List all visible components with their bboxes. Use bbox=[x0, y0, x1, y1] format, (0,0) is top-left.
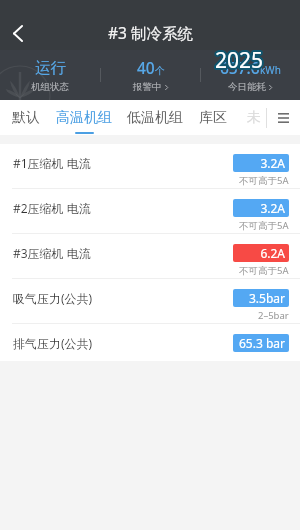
staticText: 排气压力(公共) bbox=[13, 335, 93, 351]
staticText: 运行 bbox=[35, 58, 66, 78]
staticText: 今日能耗 bbox=[228, 81, 266, 93]
staticText: 2025 bbox=[216, 46, 265, 75]
button[interactable]: Menu bbox=[267, 100, 300, 135]
staticText: #1压缩机 电流 bbox=[13, 155, 91, 171]
staticText: 2025 bbox=[216, 47, 265, 76]
staticText: 2025 bbox=[215, 47, 264, 76]
staticText: 2025 bbox=[213, 45, 262, 74]
staticText: 2025 bbox=[214, 48, 263, 77]
staticText: 2025 bbox=[216, 48, 265, 77]
staticText: 不可高于5A bbox=[239, 219, 289, 232]
staticText: 未 bbox=[247, 109, 261, 127]
button[interactable]: 默认 bbox=[12, 100, 40, 135]
staticText: 3.5bar bbox=[248, 290, 285, 306]
button[interactable]: #1压缩机 电流 bbox=[0, 144, 300, 188]
staticText: 不可高于5A bbox=[239, 174, 289, 187]
staticText: 6.2A bbox=[260, 245, 285, 261]
button[interactable]: 657.6 bbox=[201, 50, 300, 100]
staticText: 40 bbox=[137, 57, 155, 78]
staticText: #3 制冷系统 bbox=[108, 22, 193, 43]
button[interactable]: #3压缩机 电流 bbox=[0, 234, 300, 278]
staticText: 2025 bbox=[214, 44, 263, 73]
staticText: 2025 bbox=[216, 44, 265, 73]
staticText: 2025 bbox=[215, 46, 264, 75]
button[interactable]: 排气压力(公共) bbox=[0, 324, 300, 361]
staticText: 库区 bbox=[199, 109, 227, 127]
staticText: 吸气压力(公共) bbox=[13, 290, 93, 306]
button[interactable]: 库区 bbox=[199, 100, 227, 135]
staticText: 2025 bbox=[215, 46, 264, 75]
staticText: 报警中 bbox=[133, 81, 162, 93]
staticText: 2025 bbox=[217, 45, 266, 74]
button[interactable]: 运行 bbox=[0, 50, 100, 100]
staticText: 2025 bbox=[217, 47, 266, 76]
staticText: 2025 bbox=[214, 46, 263, 75]
staticText: 2025 bbox=[213, 47, 262, 76]
staticText: 2025 bbox=[217, 46, 266, 75]
staticText: 2025 bbox=[213, 46, 262, 75]
staticText: #3压缩机 电流 bbox=[13, 245, 91, 261]
staticText: 2025 bbox=[216, 45, 265, 74]
button[interactable]: #2压缩机 电流 bbox=[0, 189, 300, 233]
staticText: 低温机组 bbox=[127, 109, 183, 127]
staticText: 2025 bbox=[214, 45, 263, 74]
button[interactable]: 低温机组 bbox=[127, 100, 183, 135]
button[interactable]: 吸气压力(公共) bbox=[0, 279, 300, 323]
staticText: 2025 bbox=[215, 48, 264, 77]
staticText: 机组状态 bbox=[31, 81, 69, 93]
staticText: 3.2A bbox=[260, 200, 285, 216]
staticText: 657.6 bbox=[220, 57, 260, 78]
staticText: 2025 bbox=[215, 45, 264, 74]
staticText: 3.2A bbox=[260, 155, 285, 171]
staticText: 2025 bbox=[215, 44, 264, 73]
button[interactable]: Back bbox=[0, 17, 36, 50]
button[interactable]: 高温机组 bbox=[56, 100, 112, 135]
staticText: 65.3 bar bbox=[239, 335, 285, 351]
staticText: 高温机组 bbox=[56, 109, 112, 127]
staticText: 2025 bbox=[214, 47, 263, 76]
staticText: 不可高于5A bbox=[239, 264, 289, 277]
staticText: kWh bbox=[260, 63, 281, 77]
button[interactable]: 未 bbox=[247, 100, 261, 135]
staticText: 个 bbox=[155, 64, 165, 77]
staticText: 2–5bar bbox=[258, 309, 289, 322]
staticText: 默认 bbox=[12, 109, 40, 127]
staticText: #2压缩机 电流 bbox=[13, 200, 91, 216]
button[interactable]: 40 bbox=[101, 50, 200, 100]
